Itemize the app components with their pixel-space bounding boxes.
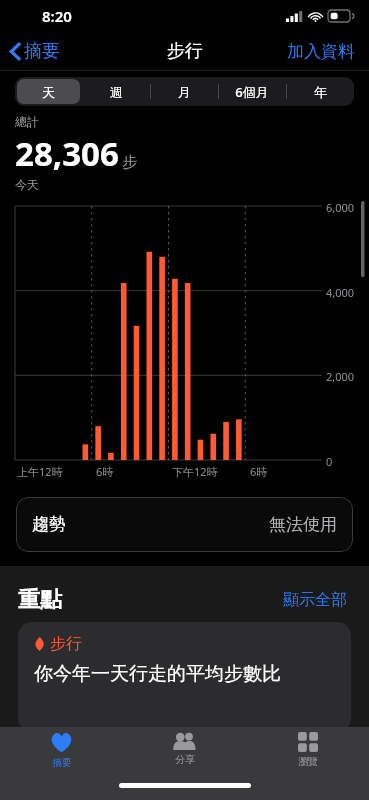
staticText: 8:20 [42, 6, 72, 26]
button[interactable]: 顯示全部 [279, 586, 351, 614]
staticText: 2,000 [326, 369, 355, 384]
staticText: 你今年一天行走的平均步數比 [34, 662, 281, 686]
button[interactable]: 趨勢 [16, 497, 353, 552]
staticText: 天 [42, 84, 55, 100]
staticText: 摘要 [24, 40, 60, 63]
staticText: 趨勢 [32, 514, 66, 535]
staticText: 6,000 [326, 200, 355, 215]
staticText: 摘要 [52, 756, 72, 769]
staticText: 年 [314, 84, 327, 100]
button[interactable]: 加入資料 [273, 37, 369, 66]
staticText: 下午12時 [172, 464, 218, 479]
staticText: 步行 [50, 634, 82, 654]
staticText: 月 [178, 84, 191, 100]
button[interactable]: 6個月 [218, 77, 286, 106]
staticText: 上午12時 [17, 464, 63, 479]
button[interactable]: 瀏覽 [246, 727, 369, 775]
button[interactable]: 摘要 [0, 727, 123, 775]
button[interactable]: 週 [82, 77, 150, 106]
staticText: 今天 [15, 177, 39, 192]
staticText: 步 [122, 153, 137, 172]
staticText: 週 [110, 84, 123, 100]
button[interactable]: 年 [286, 77, 354, 106]
staticText: 分享 [175, 753, 195, 766]
staticText: 步行 [167, 40, 203, 63]
staticText: 重點 [18, 586, 62, 614]
button[interactable]: 月 [150, 77, 218, 106]
button[interactable]: 天 [15, 77, 82, 106]
staticText: 6時 [96, 464, 114, 479]
button[interactable]: 步行 [18, 622, 351, 732]
staticText: 6個月 [235, 83, 269, 101]
button[interactable]: 摘要 [0, 36, 68, 67]
staticText: 瀏覽 [298, 755, 318, 768]
staticText: 28,306 [15, 131, 119, 176]
staticText: 6時 [250, 464, 268, 479]
staticText: 4,000 [326, 285, 355, 300]
staticText: 0 [326, 454, 333, 469]
staticText: 無法使用 [269, 514, 337, 535]
staticText: 總計 [15, 114, 39, 129]
button[interactable]: 分享 [123, 727, 246, 775]
